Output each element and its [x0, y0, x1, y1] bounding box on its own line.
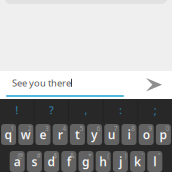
- staticText: &: [70, 151, 75, 160]
- staticText: :: [119, 103, 122, 117]
- staticText: 0: [165, 124, 169, 133]
- button[interactable]: 9: [139, 124, 154, 145]
- staticText: k: [134, 153, 141, 169]
- staticText: @: [17, 151, 23, 160]
- button[interactable]: 5: [70, 124, 85, 145]
- staticText: 5: [79, 124, 83, 133]
- staticText: (: [107, 151, 109, 160]
- button[interactable]: Send: [146, 78, 162, 92]
- button[interactable]: $: [44, 151, 59, 172]
- button[interactable]: 3: [35, 124, 50, 145]
- button[interactable]: ;: [138, 99, 172, 121]
- button[interactable]: ,: [69, 99, 103, 121]
- staticText: ': [142, 151, 144, 160]
- staticText: o: [143, 126, 150, 142]
- staticText: g: [82, 153, 90, 169]
- staticText: 7: [114, 124, 118, 133]
- staticText: See you there: [12, 77, 71, 89]
- staticText: i: [127, 126, 130, 142]
- button[interactable]: *: [78, 151, 93, 172]
- staticText: j: [119, 153, 122, 169]
- staticText: *: [88, 151, 92, 160]
- button[interactable]: @: [10, 151, 25, 172]
- staticText: s: [31, 153, 37, 169]
- button[interactable]: 7: [104, 124, 119, 145]
- staticText: e: [39, 126, 46, 142]
- staticText: 3: [45, 124, 49, 133]
- staticText: 2: [28, 124, 32, 133]
- button[interactable]: 6: [87, 124, 102, 145]
- button[interactable]: #: [27, 151, 42, 172]
- staticText: ,: [84, 103, 87, 117]
- button[interactable]: ": [147, 151, 162, 172]
- staticText: 4: [62, 124, 66, 133]
- staticText: ): [124, 151, 126, 160]
- staticText: $: [54, 151, 58, 160]
- button[interactable]: ': [130, 151, 145, 172]
- button[interactable]: :: [104, 99, 137, 121]
- staticText: q: [5, 126, 13, 142]
- button[interactable]: ?: [35, 99, 68, 121]
- staticText: w: [21, 126, 31, 142]
- staticText: 1: [11, 124, 15, 133]
- staticText: 8: [131, 124, 135, 133]
- staticText: l: [153, 153, 156, 169]
- staticText: d: [48, 153, 56, 169]
- button[interactable]: (: [96, 151, 111, 172]
- staticText: ?: [49, 103, 54, 117]
- staticText: ;: [154, 103, 157, 117]
- button[interactable]: 4: [53, 124, 68, 145]
- button[interactable]: 1: [1, 124, 16, 145]
- staticText: r: [58, 126, 63, 142]
- button[interactable]: &: [61, 151, 76, 172]
- staticText: h: [99, 153, 107, 169]
- staticText: p: [159, 126, 167, 142]
- staticText: 9: [148, 124, 152, 133]
- staticText: u: [108, 126, 116, 142]
- staticText: #: [36, 151, 40, 160]
- staticText: 6: [97, 124, 101, 133]
- button[interactable]: 0: [156, 124, 171, 145]
- staticText: y: [91, 126, 98, 142]
- button[interactable]: ): [113, 151, 128, 172]
- button[interactable]: 8: [121, 124, 136, 145]
- button[interactable]: See you there: [0, 71, 130, 99]
- button[interactable]: 2: [18, 124, 33, 145]
- staticText: !: [15, 103, 18, 117]
- staticText: a: [14, 153, 21, 169]
- staticText: f: [67, 153, 71, 169]
- staticText: ": [158, 151, 161, 160]
- staticText: t: [75, 126, 80, 142]
- button[interactable]: !: [0, 99, 34, 121]
